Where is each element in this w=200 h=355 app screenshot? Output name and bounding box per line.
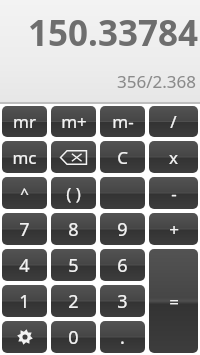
button[interactable]: 8 [51,213,96,245]
button[interactable]: m- [100,106,145,137]
staticText: ^ [20,183,29,203]
staticText: 5 [68,253,79,278]
button[interactable]: 7 [2,213,47,245]
button[interactable]: mc [2,141,47,173]
button[interactable] [100,177,145,209]
staticText: 2 [68,289,79,314]
staticText: ( ) [66,182,81,205]
staticText: 9 [117,217,128,242]
button[interactable]: - [149,177,198,209]
staticText: 3 [117,289,128,314]
staticText: mr [13,110,36,133]
staticText: C [117,146,128,169]
button[interactable]: 6 [100,249,145,281]
button[interactable]: ^ [2,177,47,209]
button[interactable]: mr [2,106,47,137]
button[interactable]: Settings [2,321,47,353]
button[interactable]: C [100,141,145,173]
button[interactable]: . [100,321,145,353]
staticText: 1 [19,289,30,314]
staticText: . [120,325,125,350]
button[interactable]: 1 [2,285,47,317]
staticText: m+ [61,110,87,133]
staticText: - [171,182,177,205]
staticText: 6 [117,253,128,278]
button[interactable]: / [149,106,198,137]
button[interactable]: 3 [100,285,145,317]
button[interactable]: Backspace [51,141,96,173]
button[interactable]: 0 [51,321,96,353]
staticText: x [169,146,178,169]
button[interactable]: x [149,141,198,173]
button[interactable]: = [149,249,198,353]
staticText: + [169,218,179,241]
button[interactable]: ( ) [51,177,96,209]
staticText: mc [12,146,37,169]
button[interactable]: 5 [51,249,96,281]
button[interactable]: 9 [100,213,145,245]
button[interactable]: m+ [51,106,96,137]
staticText: 0 [68,325,79,350]
staticText: 4 [19,253,30,278]
staticText: 7 [19,217,30,242]
staticText: / [170,110,177,133]
staticText: 356/2.368 [0,70,196,93]
staticText: 8 [68,217,79,242]
staticText: 150.33784 [2,9,198,57]
staticText: m- [112,110,134,133]
staticText: = [169,290,179,313]
button[interactable]: 2 [51,285,96,317]
button[interactable]: + [149,213,198,245]
button[interactable]: 4 [2,249,47,281]
